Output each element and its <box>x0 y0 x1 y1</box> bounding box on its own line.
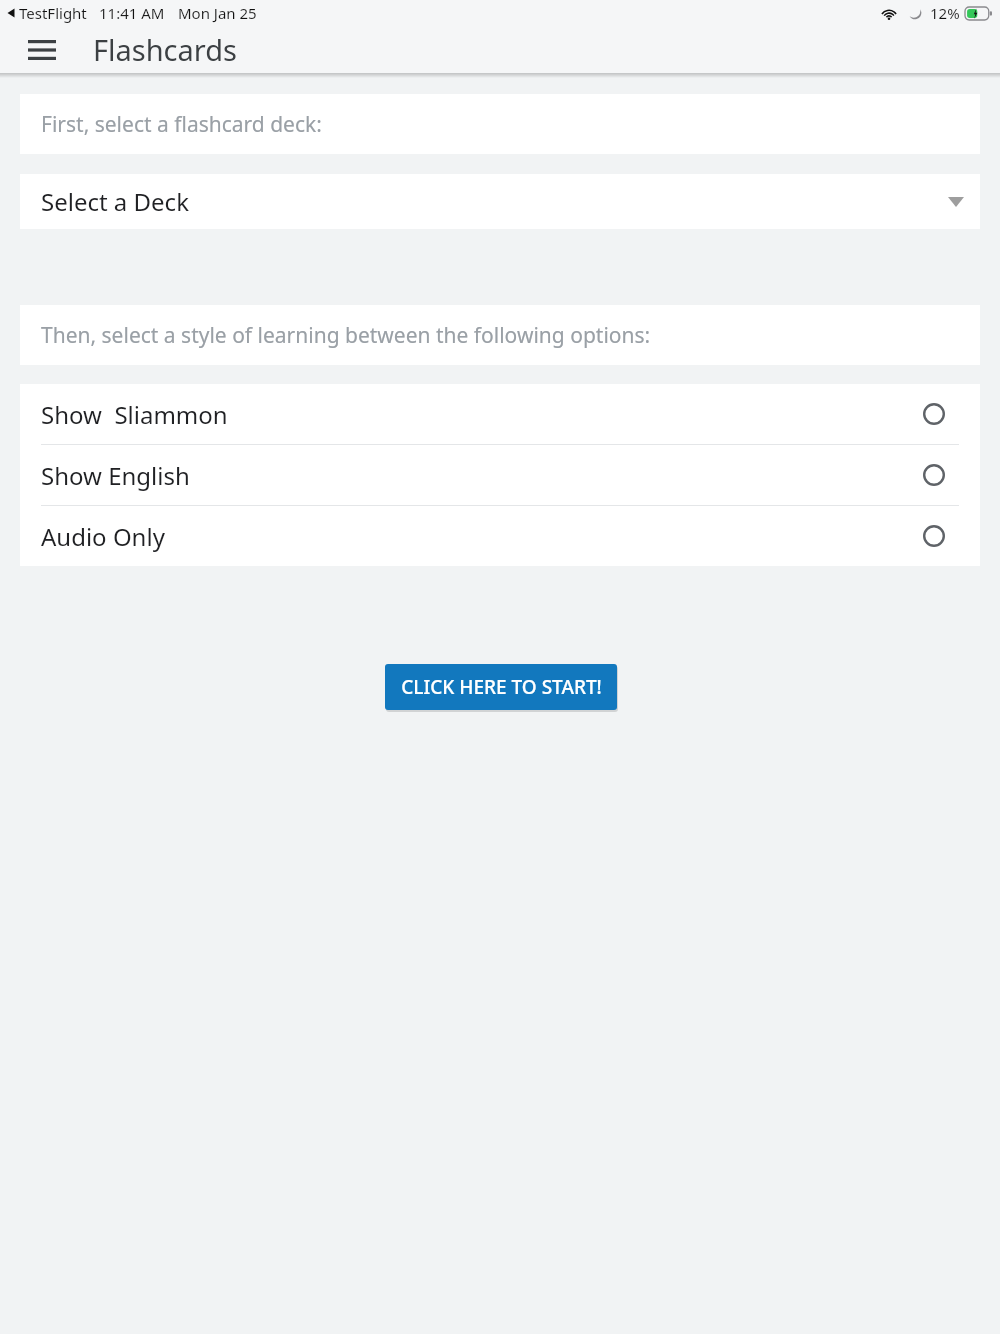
staticText: First, select a flashcard deck: <box>41 110 322 139</box>
staticText: Mon Jan 25 <box>178 3 257 23</box>
staticText: Then, select a style of learning between… <box>41 321 651 350</box>
button[interactable]: Open navigation menu <box>16 28 68 72</box>
staticText: Show Sliammon <box>41 398 228 431</box>
staticText: TestFlight <box>19 3 87 23</box>
staticText: 12% <box>930 3 960 23</box>
button[interactable]: Show Sliammon <box>20 384 980 444</box>
staticText: Flashcards <box>93 30 237 69</box>
staticText: 11:41 AM <box>99 3 165 23</box>
button[interactable]: Show English <box>20 445 980 505</box>
button[interactable]: CLICK HERE TO START! <box>385 664 617 710</box>
button[interactable]: Select a Deck <box>20 174 980 229</box>
staticText: Show English <box>41 459 190 492</box>
staticText: Select a Deck <box>41 185 189 218</box>
staticText: CLICK HERE TO START! <box>401 674 602 700</box>
staticText: Audio Only <box>41 520 165 553</box>
button[interactable]: Audio Only <box>20 506 980 566</box>
